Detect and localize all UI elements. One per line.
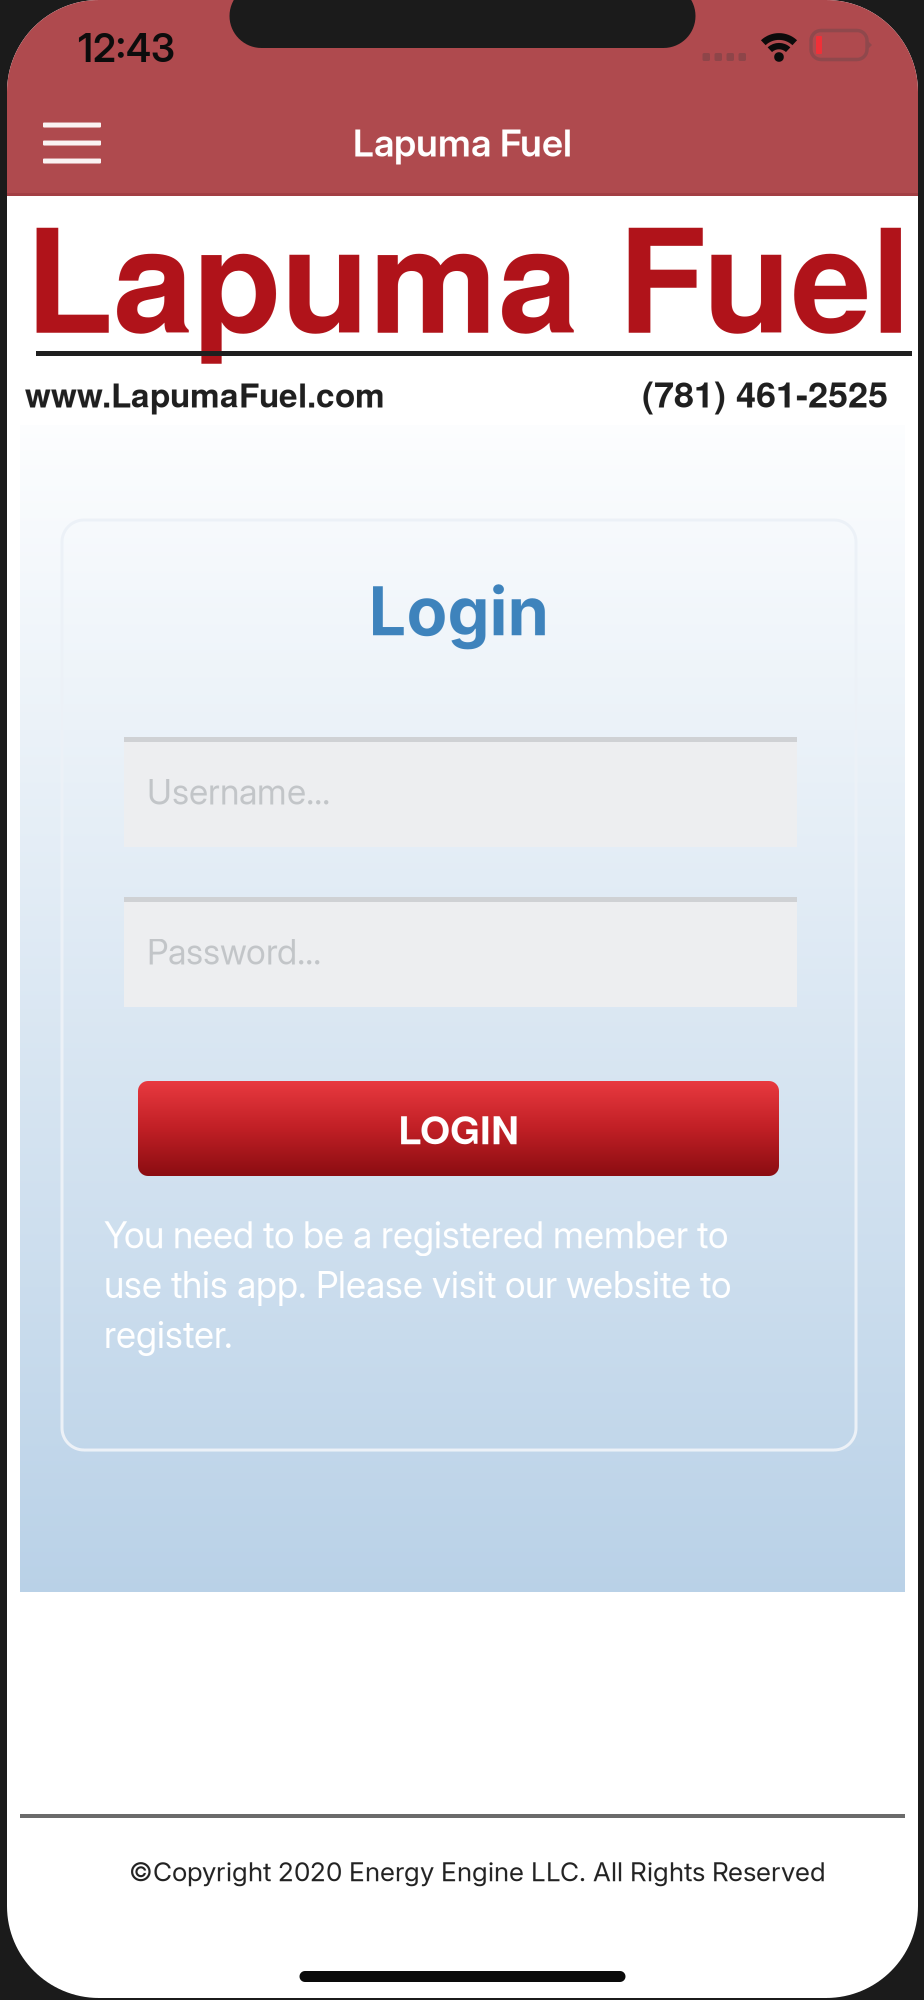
staticText: Lapuma Fuel [353, 120, 572, 166]
staticText: Password... [147, 931, 321, 973]
staticText: You need to be a registered member to us… [104, 1213, 731, 1357]
staticText: 12:43 [78, 25, 175, 71]
button[interactable]: Password... [124, 897, 797, 1007]
button[interactable]: LOGIN [138, 1081, 779, 1176]
staticText: (781) 461-2525 [642, 367, 888, 419]
staticText: Lapuma Fuel [25, 170, 911, 377]
staticText: Username... [147, 771, 330, 813]
button[interactable]: Username... [124, 737, 797, 847]
staticText: Login [368, 571, 549, 651]
staticText: LOGIN [398, 1101, 519, 1156]
staticText: www.LapumaFuel.com [25, 370, 385, 418]
staticText: ©Copyright 2020 Energy Engine LLC. All R… [129, 1856, 826, 1888]
button[interactable]: Menu [20, 90, 124, 196]
